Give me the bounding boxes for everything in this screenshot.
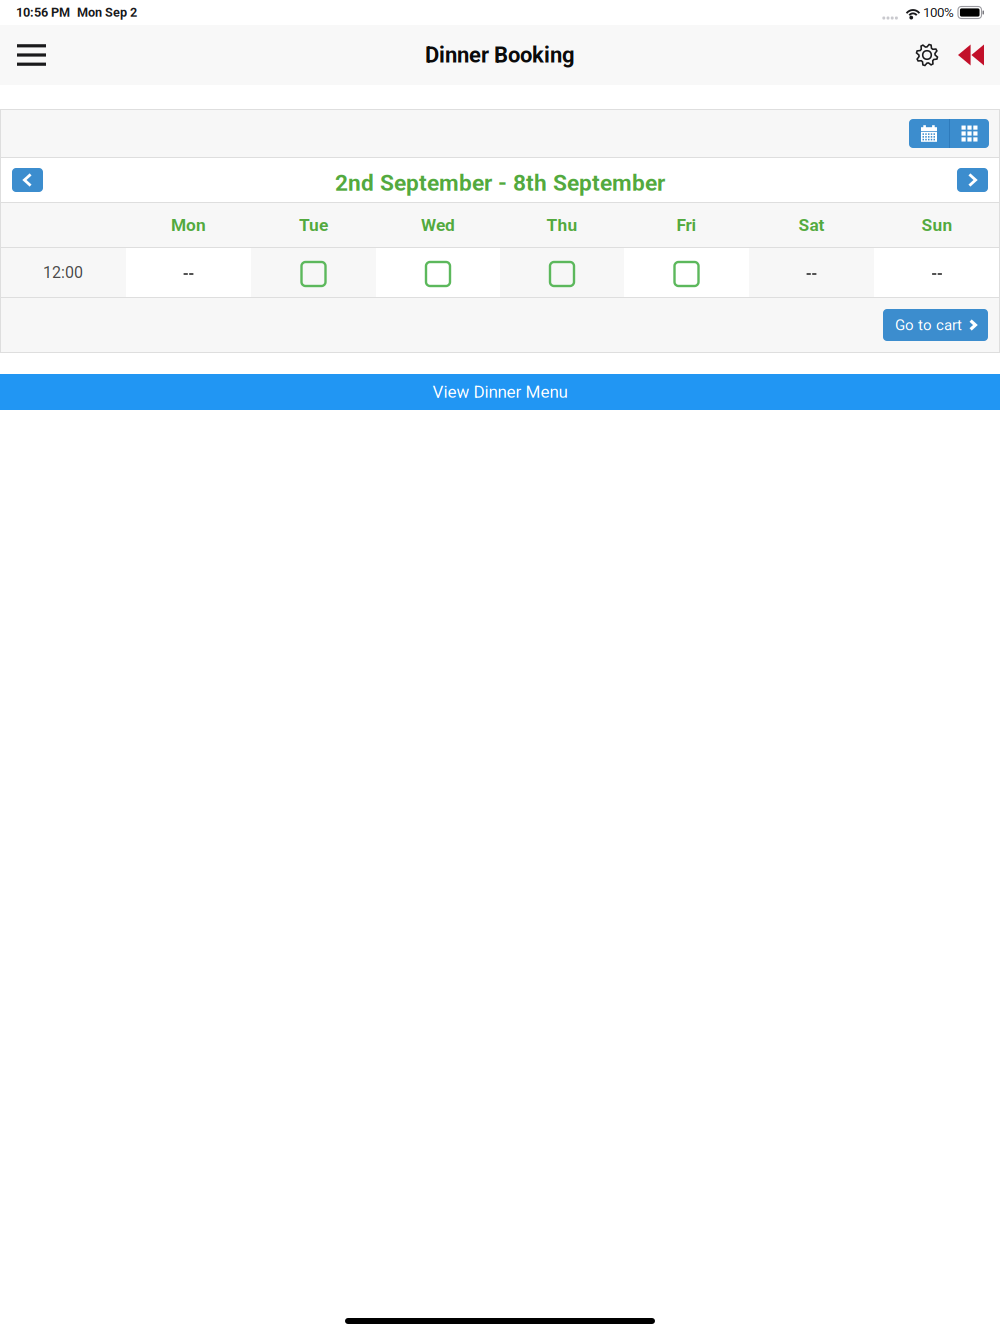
- staticText: Mon Sep 2: [77, 5, 137, 20]
- staticText: Sun: [921, 215, 952, 235]
- staticText: Wed: [421, 215, 455, 235]
- staticText: Sat: [798, 215, 824, 235]
- staticText: Fri: [676, 215, 696, 235]
- staticText: Thu: [546, 215, 577, 235]
- button[interactable]: Go to cart: [883, 309, 988, 341]
- button[interactable]: Rewind: [949, 25, 993, 85]
- staticText: 12:00: [43, 263, 83, 282]
- staticText: Tue: [299, 215, 328, 235]
- staticText: View Dinner Menu: [432, 382, 567, 402]
- staticText: Go to cart: [895, 316, 962, 334]
- button[interactable]: Grid view: [950, 119, 989, 148]
- staticText: 10:56 PM: [16, 5, 70, 20]
- button[interactable]: Menu: [0, 25, 63, 85]
- staticText: 2nd September - 8th September: [335, 170, 665, 196]
- staticText: 100%: [923, 5, 954, 20]
- button[interactable]: View Dinner Menu: [0, 374, 1000, 410]
- staticText: Mon: [171, 215, 206, 235]
- button[interactable]: Calendar view: [909, 119, 949, 148]
- button[interactable]: Settings: [905, 25, 949, 85]
- button[interactable]: Next week: [957, 168, 1000, 192]
- button[interactable]: Previous week: [0, 168, 43, 192]
- staticText: Dinner Booking: [425, 42, 575, 68]
